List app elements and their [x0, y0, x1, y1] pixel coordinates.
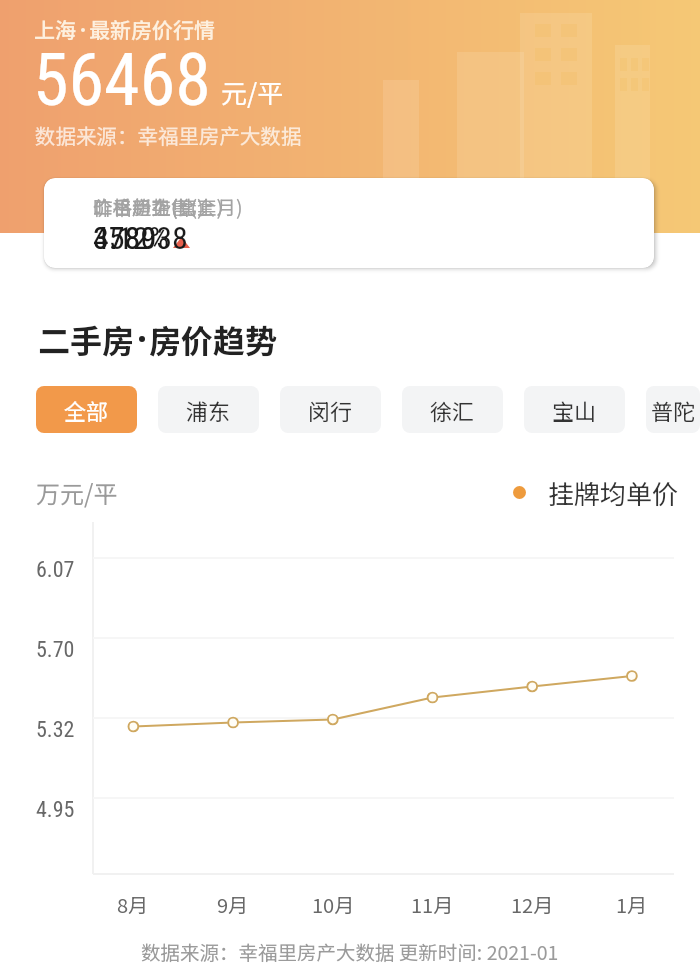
- button[interactable]: 浦东: [158, 386, 259, 433]
- staticText: 徐汇: [430, 394, 475, 426]
- staticText: 6.07: [36, 557, 75, 583]
- staticText: 昨日新上(套): [93, 192, 204, 220]
- staticText: 1月: [616, 890, 648, 919]
- staticText: 10月: [312, 890, 355, 919]
- staticText: 12月: [511, 890, 554, 919]
- staticText: 4.95: [36, 797, 75, 823]
- staticText: 3780: [93, 219, 157, 257]
- staticText: 56468: [33, 38, 211, 122]
- staticText: 数据来源：幸福里房产大数据 更新时间: 2021-01: [141, 937, 559, 965]
- staticText: 房价趋势: [149, 316, 278, 362]
- staticText: 元/平: [221, 73, 284, 111]
- staticText: 价格趋势(比上月): [93, 192, 243, 220]
- staticText: 3.12%: [93, 219, 170, 257]
- staticText: 上海: [34, 14, 76, 44]
- staticText: 浦东: [186, 394, 231, 426]
- button[interactable]: 全部: [36, 386, 137, 433]
- staticText: 5.32: [36, 717, 75, 743]
- staticText: 最新房价行情: [89, 14, 215, 44]
- staticText: 宝山: [552, 394, 597, 426]
- staticText: 数据来源：幸福里房产大数据: [35, 120, 302, 150]
- staticText: 万元/平: [36, 475, 118, 510]
- button[interactable]: 宝山: [524, 386, 625, 433]
- staticText: 挂牌均单价: [548, 474, 679, 512]
- staticText: 二手房在售(套): [93, 192, 224, 220]
- staticText: 普陀: [651, 394, 696, 426]
- button[interactable]: 价格趋势(比上月): [50, 178, 242, 268]
- button[interactable]: 闵行: [280, 386, 381, 433]
- staticText: 8月: [117, 890, 149, 919]
- staticText: 11月: [411, 890, 454, 919]
- button[interactable]: 徐汇: [402, 386, 503, 433]
- button[interactable]: 昨日新上(套): [459, 178, 651, 268]
- button[interactable]: 普陀: [646, 386, 700, 433]
- staticText: 458938: [93, 219, 188, 257]
- staticText: 闵行: [308, 394, 353, 426]
- staticText: 9月: [217, 890, 249, 919]
- staticText: 全部: [64, 394, 109, 426]
- staticText: 5.70: [36, 637, 75, 663]
- staticText: 二手房: [38, 316, 135, 362]
